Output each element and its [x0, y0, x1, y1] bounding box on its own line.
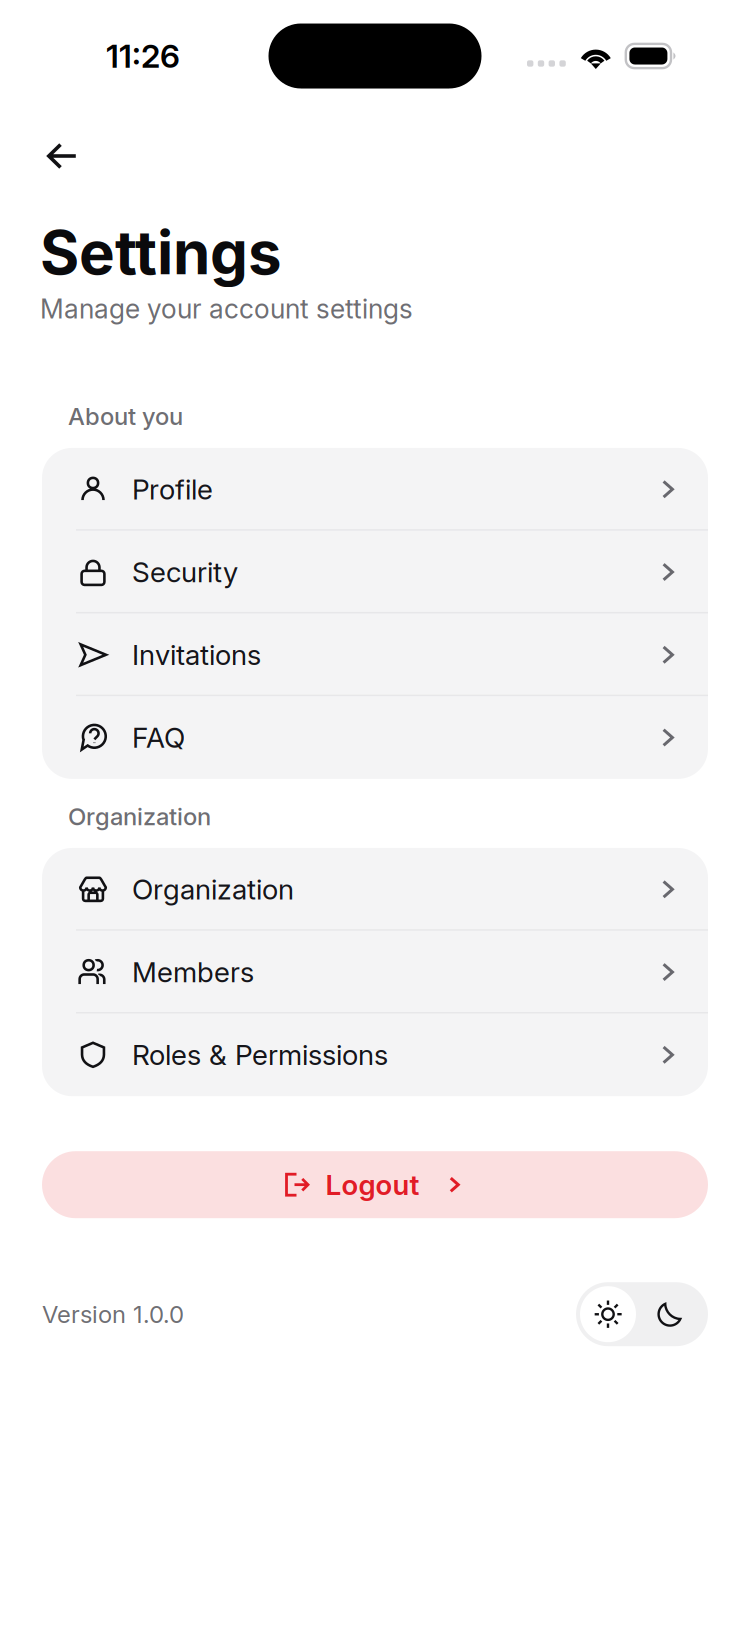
staticText: Security [132, 555, 238, 589]
staticText: Manage your account settings [40, 293, 413, 325]
staticText: Settings [40, 216, 282, 289]
button[interactable]: Logout [0, 1151, 750, 1218]
button[interactable]: Invitations [42, 613, 708, 696]
button[interactable]: Profile [42, 448, 708, 531]
staticText: Logout [325, 1168, 419, 1202]
staticText: 11:26 [106, 37, 180, 75]
button[interactable]: Roles & Permissions [42, 1013, 708, 1096]
button[interactable]: Security [42, 531, 708, 613]
button[interactable]: Back [0, 119, 95, 193]
button[interactable]: Organization [42, 848, 708, 931]
staticText: Organization [132, 872, 294, 906]
button[interactable]: Members [42, 931, 708, 1013]
staticText: Members [132, 955, 254, 989]
button[interactable]: Dark appearance [636, 1286, 704, 1342]
staticText: Version 1.0.0 [42, 1300, 184, 1329]
button[interactable]: FAQ [42, 696, 708, 779]
button[interactable]: Light appearance [580, 1286, 636, 1342]
staticText: Roles & Permissions [132, 1038, 388, 1072]
staticText: Profile [132, 472, 213, 506]
staticText: About you [68, 402, 183, 431]
staticText: FAQ [132, 721, 185, 754]
staticText: Organization [68, 802, 211, 831]
staticText: Invitations [132, 638, 261, 672]
